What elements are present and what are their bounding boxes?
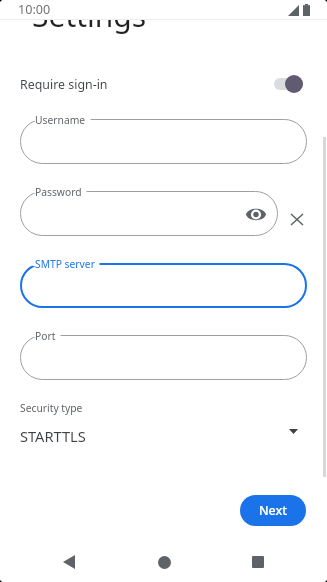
staticText: Port <box>35 329 56 343</box>
button[interactable]: Clear <box>284 206 310 232</box>
button[interactable]: Require sign-in <box>0 60 327 108</box>
staticText: 10:00 <box>18 1 51 18</box>
button[interactable]: Username <box>20 119 307 164</box>
staticText: Password <box>35 185 82 199</box>
button[interactable]: Recent apps <box>236 540 280 582</box>
button[interactable] <box>274 74 304 94</box>
staticText: SMTP server <box>35 257 95 271</box>
staticText: STARTTLS <box>20 426 86 446</box>
button[interactable]: Home <box>142 540 186 582</box>
staticText: Settings <box>32 0 147 36</box>
staticText: Require sign-in <box>20 76 108 93</box>
button[interactable]: Next <box>240 495 306 526</box>
button[interactable]: SMTP server <box>20 263 307 308</box>
button[interactable]: Show password <box>244 202 268 226</box>
button[interactable]: Password <box>20 191 278 236</box>
button[interactable]: Back <box>47 540 91 582</box>
staticText: Next <box>259 502 287 519</box>
staticText: Security type <box>20 401 83 415</box>
button[interactable]: Port <box>20 335 307 380</box>
staticText: Username <box>35 113 86 127</box>
button[interactable]: Security type <box>0 401 327 455</box>
